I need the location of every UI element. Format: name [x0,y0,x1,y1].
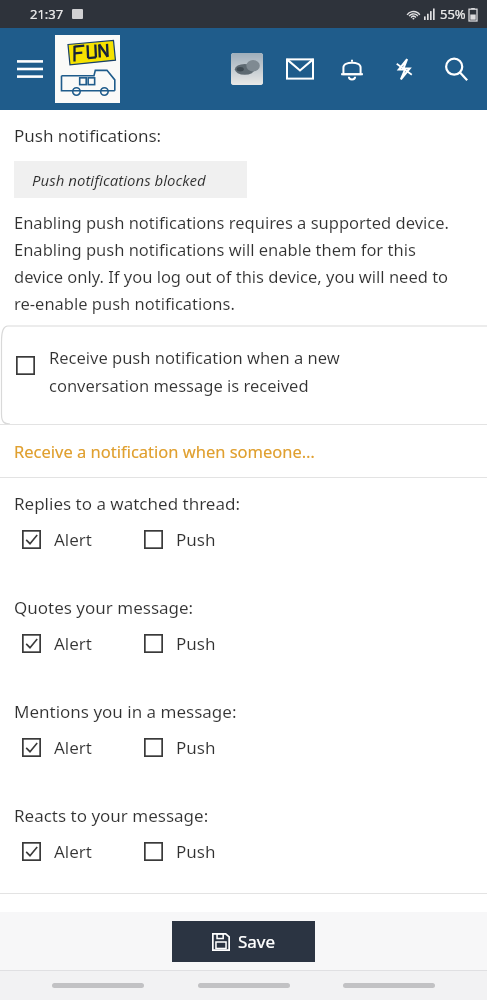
staticText: Replies to a watched thread: [14,492,240,515]
staticText: device only. If you log out of this devi… [14,265,449,287]
staticText: Enabling push notifications will enable … [14,238,416,260]
staticText: conversation message is received [49,374,309,396]
staticText: Alert [54,840,92,863]
staticText: Push [176,632,216,655]
staticText: 55% [440,5,466,23]
staticText: Alert [54,528,92,551]
staticText: Save [238,930,276,953]
button[interactable]: Push notifications blocked [14,161,247,198]
button[interactable]: Account [227,49,267,89]
button[interactable]: Push [144,528,216,551]
staticText: Enabling push notifications requires a s… [14,211,449,233]
button[interactable]: Save [172,921,315,962]
button[interactable]: Menu [8,47,52,91]
button[interactable]: Alert [22,528,92,551]
button[interactable]: Inbox [283,52,317,86]
button[interactable]: Push [144,632,216,655]
staticText: Receive a notification when someone… [14,440,315,462]
button[interactable]: Home [55,35,120,103]
staticText: Push [176,840,216,863]
staticText: re-enable push notifications. [14,292,235,314]
button[interactable]: Alert [22,840,92,863]
staticText: Push [176,736,216,759]
button[interactable]: Push [144,736,216,759]
button[interactable]: Receive push notification when a new [16,346,467,396]
button[interactable]: Alerts [335,52,369,86]
button[interactable]: Alert [22,736,92,759]
button[interactable]: Alert [22,632,92,655]
button[interactable]: Quick actions [387,52,421,86]
staticText: Push notifications blocked [32,170,206,190]
button[interactable]: Receive a notification when someone… [0,425,487,477]
button[interactable]: Search [439,52,473,86]
staticText: Push [176,528,216,551]
staticText: Push notifications: [14,124,162,147]
staticText: Receive push notification when a new [49,346,340,368]
staticText: Reacts to your message: [14,804,209,827]
staticText: Alert [54,632,92,655]
staticText: Mentions you in a message: [14,700,237,723]
button[interactable]: Push [144,840,216,863]
staticText: Alert [54,736,92,759]
staticText: 21:37 [30,5,64,23]
staticText: Quotes your message: [14,596,194,619]
